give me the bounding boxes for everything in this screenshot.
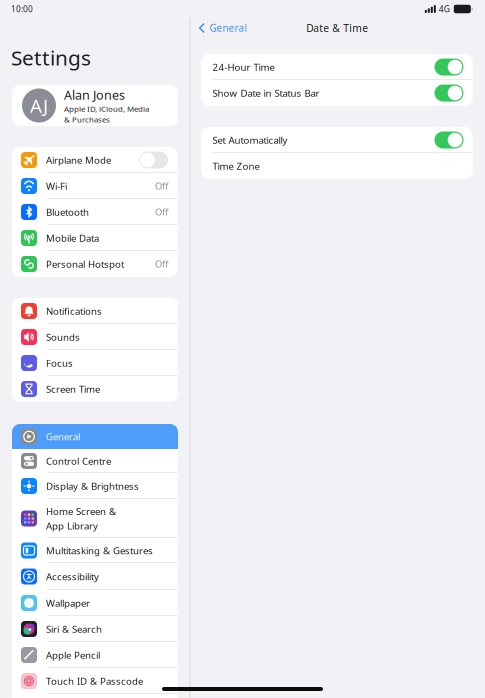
- button[interactable]: General: [190, 18, 251, 38]
- button[interactable]: Multitasking & Gestures: [12, 538, 178, 563]
- button[interactable]: Airplane Mode: [12, 147, 178, 173]
- staticText: Bluetooth: [46, 205, 89, 219]
- staticText: Time Zone: [212, 159, 259, 173]
- button[interactable]: Siri & Search: [12, 616, 178, 642]
- staticText: Sounds: [46, 330, 80, 344]
- staticText: App Library: [46, 519, 98, 532]
- button[interactable]: Personal Hotspot: [12, 251, 178, 277]
- staticText: Alan Jones: [64, 86, 125, 103]
- staticText: Settings: [11, 43, 91, 72]
- staticText: AJ: [30, 93, 48, 118]
- staticText: Apple ID, iCloud, Media: [64, 103, 149, 114]
- button[interactable]: 24-Hour Time: [201, 54, 472, 80]
- button[interactable]: AJ: [12, 85, 178, 126]
- staticText: Siri & Search: [46, 622, 102, 636]
- staticText: Mobile Data: [46, 231, 99, 245]
- staticText: 4G: [439, 3, 450, 15]
- button[interactable]: General: [12, 424, 178, 449]
- button[interactable]: Home Screen &: [12, 499, 178, 538]
- staticText: Wi-Fi: [46, 179, 67, 193]
- staticText: Off: [155, 180, 168, 192]
- button[interactable]: Sounds: [12, 324, 178, 350]
- staticText: Display & Brightness: [46, 479, 139, 493]
- staticText: & Purchases: [64, 114, 110, 125]
- staticText: General: [46, 430, 80, 443]
- staticText: Personal Hotspot: [46, 257, 124, 271]
- staticText: Apple Pencil: [46, 648, 100, 662]
- staticText: 10:00: [11, 3, 33, 15]
- staticText: Screen Time: [46, 382, 100, 396]
- button[interactable]: Bluetooth: [12, 199, 178, 225]
- staticText: Multitasking & Gestures: [46, 544, 153, 557]
- button[interactable]: Control Centre: [12, 449, 178, 473]
- button[interactable]: Mobile Data: [12, 225, 178, 251]
- button[interactable]: Show Date in Status Bar: [201, 80, 472, 106]
- staticText: Focus: [46, 356, 73, 370]
- staticText: Off: [155, 258, 168, 270]
- button[interactable]: Wi-Fi: [12, 173, 178, 199]
- staticText: Touch ID & Passcode: [46, 674, 143, 688]
- button[interactable]: Time Zone: [201, 153, 472, 179]
- staticText: 24-Hour Time: [212, 60, 274, 74]
- staticText: Home Screen &: [46, 505, 116, 518]
- button[interactable]: Touch ID & Passcode: [12, 668, 178, 694]
- button[interactable]: Focus: [12, 350, 178, 376]
- button[interactable]: Screen Time: [12, 376, 178, 402]
- button[interactable]: Apple Pencil: [12, 642, 178, 668]
- button[interactable]: Wallpaper: [12, 590, 178, 616]
- staticText: Control Centre: [46, 454, 111, 468]
- staticText: Show Date in Status Bar: [212, 86, 319, 100]
- button[interactable]: Notifications: [12, 298, 178, 324]
- button[interactable]: Accessibility: [12, 563, 178, 590]
- staticText: Accessibility: [46, 570, 99, 583]
- staticText: Airplane Mode: [46, 153, 111, 167]
- button[interactable]: Display & Brightness: [12, 473, 178, 499]
- staticText: Notifications: [46, 304, 102, 318]
- staticText: Set Automatically: [212, 133, 287, 147]
- staticText: Wallpaper: [46, 596, 90, 610]
- button[interactable]: Set Automatically: [201, 127, 472, 153]
- staticText: Off: [155, 206, 168, 218]
- staticText: General: [209, 21, 247, 35]
- staticText: Date & Time: [306, 21, 368, 35]
